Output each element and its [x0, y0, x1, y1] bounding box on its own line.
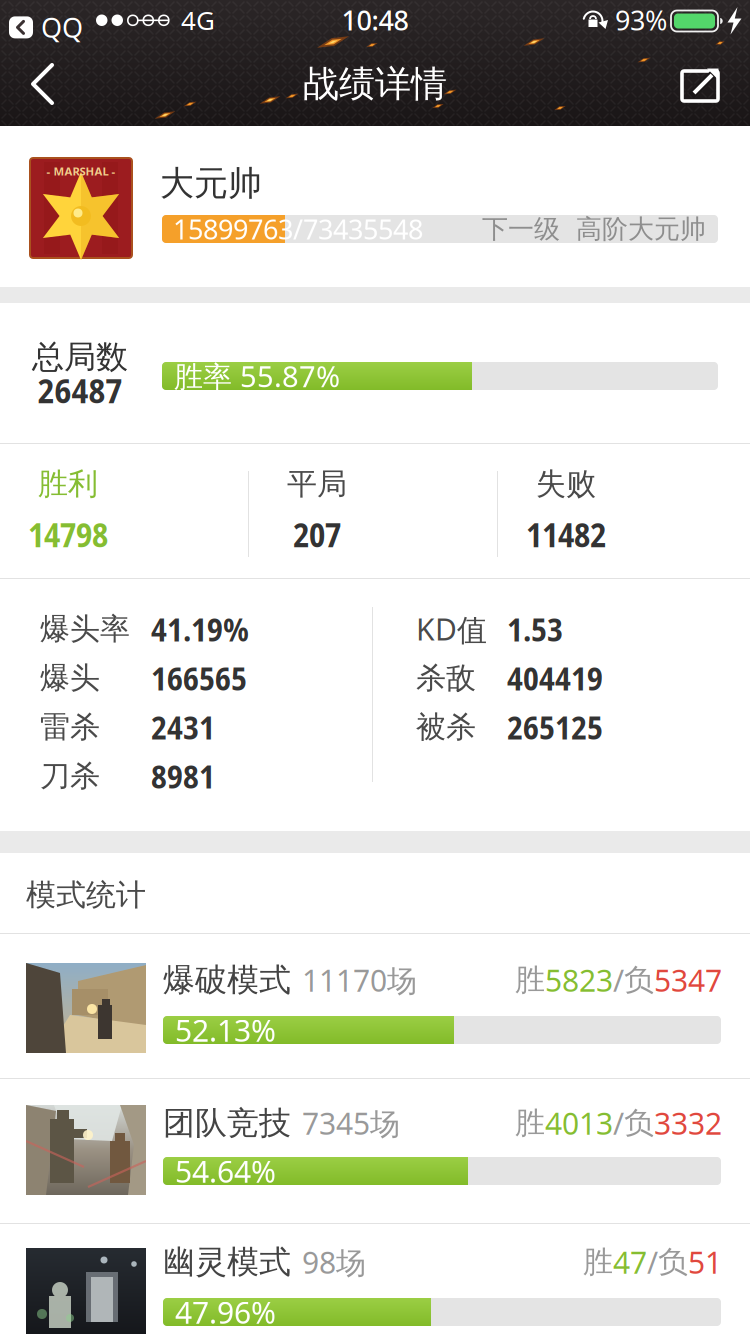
staticText: 负: [624, 961, 654, 999]
staticText: /: [613, 960, 624, 1000]
staticText: 14798: [28, 512, 108, 557]
staticText: 11170场: [302, 960, 417, 1000]
staticText: 胜利: [38, 465, 98, 503]
staticText: 总局数: [32, 337, 128, 377]
staticText: 2431: [151, 705, 215, 749]
staticText: 胜率 55.87%: [174, 356, 340, 396]
staticText: 52.13%: [175, 1010, 276, 1050]
staticText: 41.19%: [151, 607, 249, 651]
staticText: 4013: [545, 1103, 613, 1143]
staticText: 模式统计: [26, 876, 146, 914]
staticText: 失败: [536, 465, 596, 503]
staticText: 爆头率: [40, 610, 130, 648]
staticText: 15899763: [173, 211, 293, 247]
staticText: 11482: [526, 512, 606, 557]
staticText: 胜: [515, 1104, 545, 1142]
staticText: 团队竞技: [163, 1103, 291, 1143]
button[interactable]: 返回: [0, 55, 80, 113]
staticText: 爆破模式: [163, 960, 291, 1000]
staticText: 54.64%: [175, 1151, 276, 1191]
button[interactable]: 分享: [682, 67, 720, 101]
staticText: 93%: [615, 2, 667, 38]
staticText: 47: [613, 1242, 647, 1282]
staticText: 5347: [654, 960, 722, 1000]
staticText: 杀敌: [416, 659, 476, 697]
staticText: /: [647, 1242, 658, 1282]
staticText: 8981: [151, 754, 215, 798]
staticText: 战绩详情: [303, 61, 447, 107]
staticText: 平局: [287, 465, 347, 503]
staticText: 10:48: [341, 2, 408, 38]
button[interactable]: 返回QQ: [9, 9, 83, 46]
staticText: 下一级 高阶大元帅: [482, 213, 706, 245]
staticText: /: [613, 1103, 624, 1143]
staticText: 幽灵模式: [163, 1242, 291, 1282]
staticText: 1.53: [507, 607, 563, 651]
staticText: 4G: [181, 2, 215, 38]
staticText: KD值: [416, 608, 487, 649]
staticText: 51: [688, 1242, 722, 1282]
staticText: 负: [624, 1104, 654, 1142]
staticText: 3332: [654, 1103, 722, 1143]
staticText: - MARSHAL -: [46, 163, 115, 179]
staticText: 265125: [507, 705, 603, 749]
staticText: 负: [658, 1243, 688, 1281]
staticText: 98场: [302, 1242, 366, 1282]
staticText: QQ: [41, 9, 83, 46]
staticText: 被杀: [416, 708, 476, 746]
staticText: 爆头: [40, 659, 100, 697]
staticText: /73435548: [293, 211, 423, 247]
staticText: 胜: [583, 1243, 613, 1281]
staticText: 26487: [37, 367, 122, 413]
staticText: 7345场: [302, 1103, 400, 1143]
staticText: 47.96%: [175, 1292, 276, 1332]
staticText: 胜: [515, 961, 545, 999]
staticText: 404419: [507, 656, 603, 700]
staticText: 207: [293, 512, 341, 557]
staticText: 大元帅: [160, 162, 262, 205]
staticText: 5823: [545, 960, 613, 1000]
staticText: 刀杀: [40, 757, 100, 795]
staticText: 166565: [151, 656, 247, 700]
staticText: 雷杀: [40, 708, 100, 746]
